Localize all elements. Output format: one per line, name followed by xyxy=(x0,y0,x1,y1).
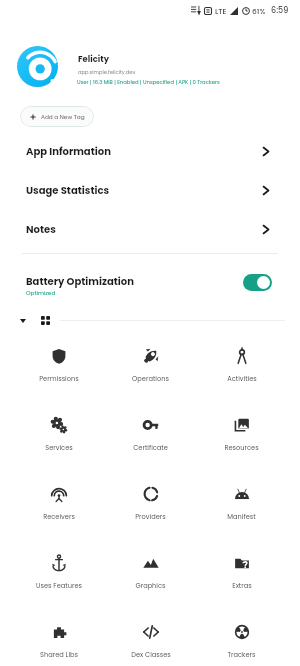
button[interactable]: Activities xyxy=(196,342,287,411)
staticText: Extras xyxy=(232,581,252,590)
staticText: Resources xyxy=(224,443,259,452)
button[interactable]: Shared Libs xyxy=(13,618,105,666)
staticText: Operations xyxy=(132,374,169,383)
staticText: Felicity xyxy=(78,53,109,65)
button[interactable]: Usage Statistics xyxy=(0,175,300,205)
staticText: Dex Classes xyxy=(131,650,171,659)
staticText: Usage Statistics xyxy=(26,183,263,197)
staticText: Receivers xyxy=(43,512,75,521)
staticText: Manifest xyxy=(227,512,256,521)
staticText: Permissions xyxy=(39,374,79,383)
button[interactable]: Grid layout xyxy=(37,312,54,329)
staticText: Trackers xyxy=(227,650,256,659)
button[interactable]: Notes xyxy=(0,214,300,244)
button[interactable]: Resources xyxy=(196,411,287,480)
staticText: Shared Libs xyxy=(40,650,78,659)
staticText: 6:59 xyxy=(271,5,289,16)
staticText: Services xyxy=(45,443,73,452)
button[interactable]: Battery optimization switch xyxy=(243,274,272,291)
button[interactable]: Sort order xyxy=(14,312,31,329)
button[interactable]: Providers xyxy=(105,480,196,549)
button[interactable]: App Information xyxy=(0,136,300,166)
button[interactable]: Extras xyxy=(196,549,287,618)
staticText: App Information xyxy=(26,144,263,158)
staticText: Add a New Tag xyxy=(41,113,85,121)
staticText: app.simple.felicity.dev xyxy=(78,69,136,76)
button[interactable]: Dex Classes xyxy=(105,618,196,666)
button[interactable]: Permissions xyxy=(13,342,105,411)
staticText: User | 16.3 MiB | Enabled | Unspecified … xyxy=(77,78,220,85)
button[interactable]: Services xyxy=(13,411,105,480)
button[interactable]: Receivers xyxy=(13,480,105,549)
button[interactable]: Graphics xyxy=(105,549,196,618)
staticText: 61% xyxy=(252,6,266,16)
staticText: Battery Optimization xyxy=(26,274,134,288)
button[interactable]: Trackers xyxy=(196,618,287,666)
button[interactable]: Certificate xyxy=(105,411,196,480)
button[interactable]: Add a New Tag xyxy=(20,106,94,127)
staticText: Uses Features xyxy=(36,581,82,590)
button[interactable]: Operations xyxy=(105,342,196,411)
staticText: Notes xyxy=(26,222,263,236)
staticText: Certificate xyxy=(133,443,168,452)
staticText: Graphics xyxy=(135,581,166,590)
staticText: Activities xyxy=(227,374,257,383)
staticText: LTE xyxy=(215,6,227,16)
staticText: Optimized xyxy=(26,289,56,297)
button[interactable]: Uses Features xyxy=(13,549,105,618)
button[interactable]: Manifest xyxy=(196,480,287,549)
staticText: Providers xyxy=(135,512,166,521)
